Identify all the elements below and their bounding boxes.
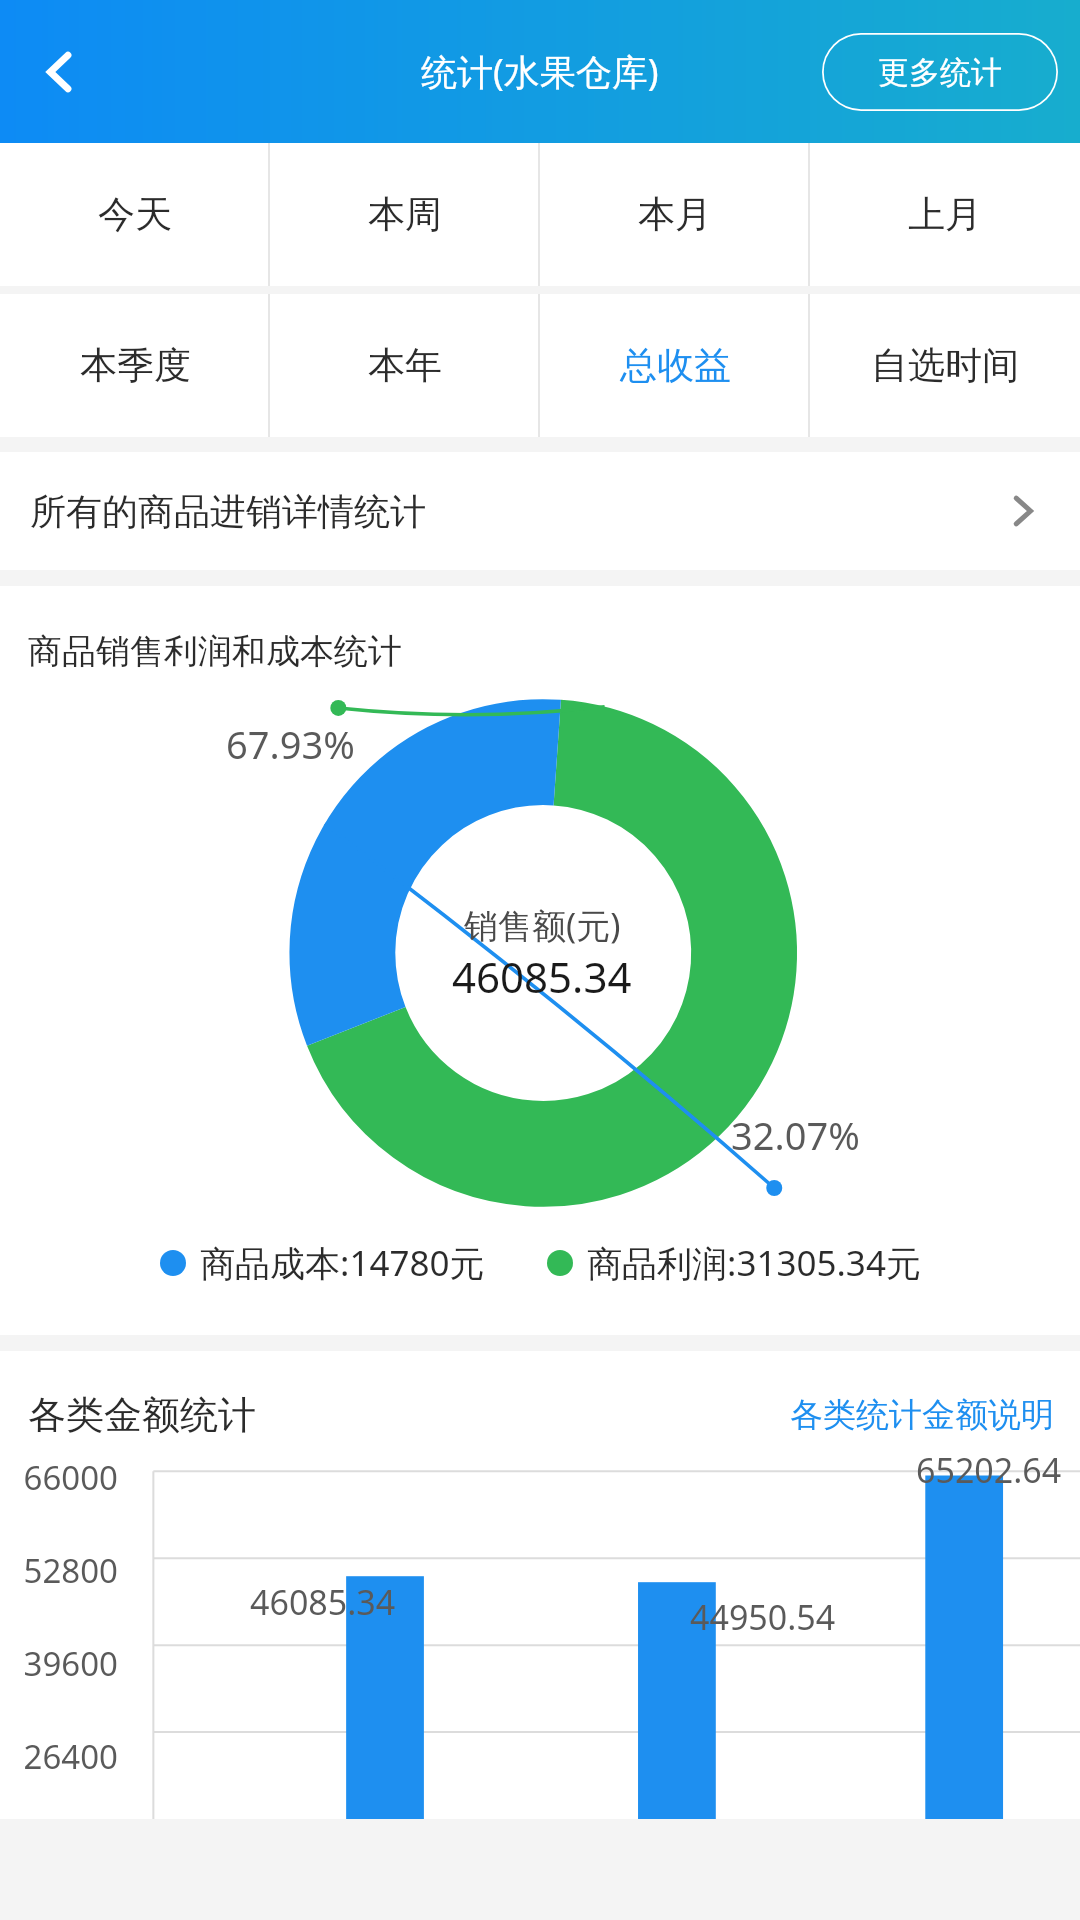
- staticText: 销售额(元): [464, 902, 621, 948]
- button[interactable]: 今天: [0, 143, 270, 286]
- staticText: 统计(水果仓库): [421, 47, 659, 96]
- staticText: 上月: [908, 191, 982, 238]
- button[interactable]: 总收益: [540, 294, 810, 437]
- staticText: 各类统计金额说明: [790, 1394, 1054, 1436]
- staticText: 商品销售利润和成本统计: [28, 630, 402, 673]
- staticText: 46085.34: [452, 948, 632, 1005]
- staticText: 自选时间: [871, 342, 1019, 389]
- staticText: 39600: [0, 1641, 118, 1686]
- button[interactable]: 所有的商品进销详情统计: [0, 452, 1080, 570]
- staticText: 商品利润:31305.34元: [587, 1239, 921, 1287]
- staticText: 66000: [0, 1455, 118, 1500]
- staticText: 所有的商品进销详情统计: [30, 489, 426, 534]
- staticText: 总收益: [620, 342, 731, 389]
- button[interactable]: 本月: [540, 143, 810, 286]
- staticText: 商品成本:14780元: [200, 1239, 485, 1287]
- button[interactable]: 本季度: [0, 294, 270, 437]
- staticText: 26400: [0, 1734, 118, 1779]
- staticText: 更多统计: [878, 53, 1002, 92]
- staticText: 各类金额统计: [28, 1391, 256, 1439]
- button[interactable]: 本年: [270, 294, 540, 437]
- button[interactable]: 各类统计金额说明: [790, 1394, 1054, 1436]
- staticText: 今天: [98, 191, 172, 238]
- staticText: 32.07%: [731, 1109, 860, 1161]
- staticText: 65202.64: [916, 1447, 1062, 1493]
- button[interactable]: 本周: [270, 143, 540, 286]
- staticText: 46085.34: [250, 1579, 396, 1625]
- button[interactable]: 自选时间: [810, 294, 1080, 437]
- staticText: 本月: [638, 191, 712, 238]
- staticText: 本年: [368, 342, 442, 389]
- staticText: 67.93%: [226, 718, 355, 770]
- staticText: 本季度: [80, 342, 191, 389]
- button[interactable]: 上月: [810, 143, 1080, 286]
- button[interactable]: Back: [18, 30, 102, 114]
- staticText: 44950.54: [690, 1594, 836, 1640]
- staticText: 本周: [368, 191, 442, 238]
- staticText: 52800: [0, 1548, 118, 1593]
- button[interactable]: 更多统计: [822, 33, 1058, 111]
